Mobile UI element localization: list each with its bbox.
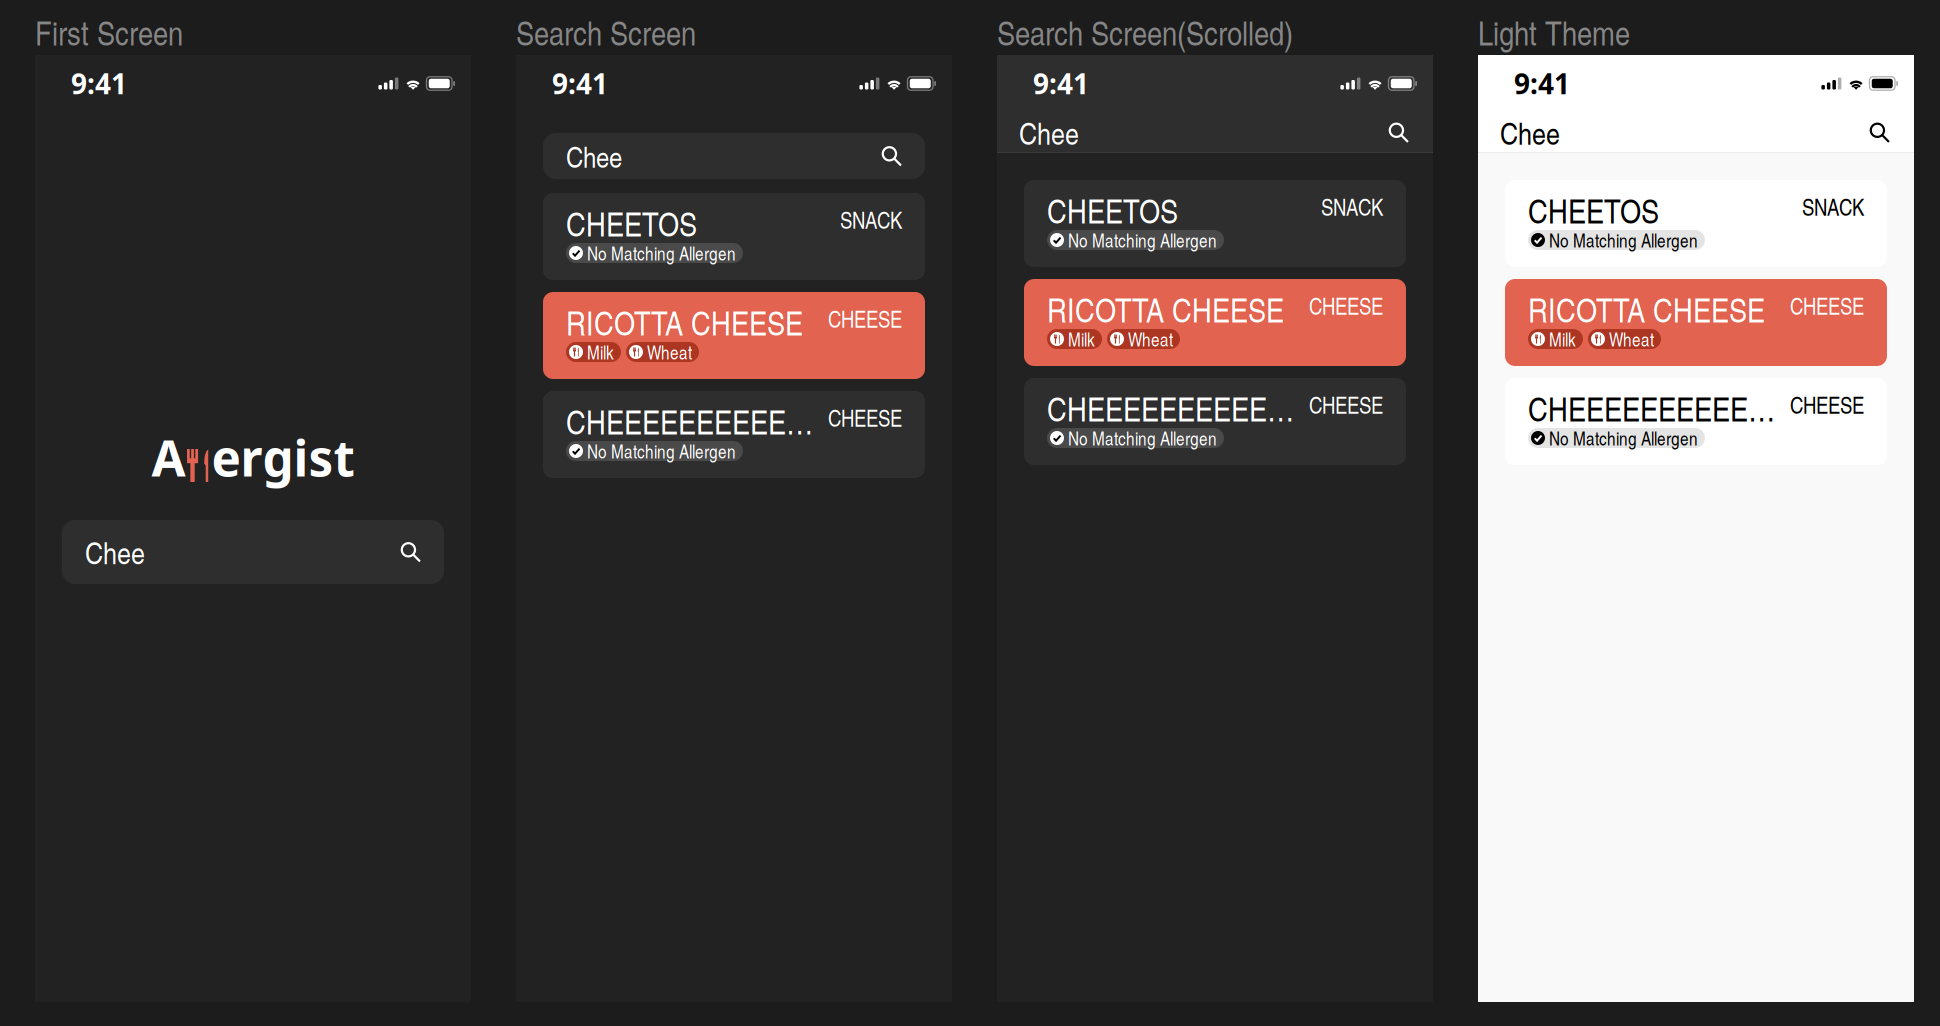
staticText: SNACK: [1802, 191, 1864, 222]
staticText: Chee: [85, 531, 145, 573]
staticText: CHEESE: [1790, 290, 1864, 321]
staticText: No Matching Allergen: [587, 240, 736, 266]
staticText: 9:41: [71, 64, 127, 102]
staticText: CHEETOS: [1528, 187, 1659, 233]
staticText: CHEEEEEEEEEEEEEEEE…: [1047, 385, 1299, 431]
staticText: First Screen: [35, 9, 183, 55]
staticText: Wheat: [1128, 326, 1173, 352]
staticText: RICOTTA CHEESE: [1047, 286, 1284, 332]
staticText: Chee: [1500, 111, 1560, 153]
staticText: No Matching Allergen: [1068, 425, 1217, 451]
staticText: CHEESE: [828, 402, 902, 433]
staticText: Wheat: [647, 339, 692, 365]
staticText: 9:41: [552, 64, 608, 102]
staticText: SNACK: [840, 204, 902, 235]
button[interactable]: CHEEEEEEEEEEEEEEEE…: [1505, 378, 1887, 465]
button[interactable]: CHEETOS: [1505, 180, 1887, 267]
staticText: 9:41: [1033, 64, 1089, 102]
staticText: CHEESE: [1790, 389, 1864, 420]
button[interactable]: Search field, Chee: [997, 112, 1433, 153]
staticText: CHEEEEEEEEEEEEEEEE…: [1528, 385, 1780, 431]
staticText: 9:41: [1514, 64, 1570, 102]
staticText: Milk: [1549, 326, 1576, 352]
staticText: No Matching Allergen: [1549, 227, 1698, 253]
button[interactable]: RICOTTA CHEESE: [1505, 279, 1887, 366]
button[interactable]: CHEETOS: [543, 193, 925, 280]
staticText: No Matching Allergen: [587, 438, 736, 464]
staticText: A: [151, 424, 185, 490]
button[interactable]: RICOTTA CHEESE: [1024, 279, 1406, 366]
staticText: CHEESE: [828, 303, 902, 334]
staticText: CHEETOS: [566, 200, 697, 246]
staticText: CHEESE: [1309, 389, 1383, 420]
staticText: CHEEEEEEEEEEEEEEEE…: [566, 398, 818, 444]
staticText: Chee: [566, 136, 622, 176]
button[interactable]: CHEEEEEEEEEEEEEEEE…: [1024, 378, 1406, 465]
button[interactable]: Search field, Chee: [1478, 112, 1914, 153]
staticText: CHEETOS: [1047, 187, 1178, 233]
button[interactable]: CHEETOS: [1024, 180, 1406, 267]
staticText: Light Theme: [1478, 9, 1630, 55]
staticText: SNACK: [1321, 191, 1383, 222]
button[interactable]: Search field, Chee: [62, 520, 444, 584]
staticText: Wheat: [1609, 326, 1654, 352]
button[interactable]: Search field, Chee: [543, 133, 925, 179]
staticText: Milk: [587, 339, 614, 365]
staticText: Milk: [1068, 326, 1095, 352]
staticText: Search Screen: [516, 9, 696, 55]
staticText: Search Screen(Scrolled): [997, 9, 1293, 55]
button[interactable]: CHEEEEEEEEEEEEEEEE…: [543, 391, 925, 478]
staticText: ergist: [211, 424, 354, 490]
staticText: RICOTTA CHEESE: [566, 299, 803, 345]
staticText: CHEESE: [1309, 290, 1383, 321]
button[interactable]: RICOTTA CHEESE: [543, 292, 925, 379]
staticText: Chee: [1019, 111, 1079, 153]
staticText: RICOTTA CHEESE: [1528, 286, 1765, 332]
staticText: No Matching Allergen: [1549, 425, 1698, 451]
staticText: No Matching Allergen: [1068, 227, 1217, 253]
